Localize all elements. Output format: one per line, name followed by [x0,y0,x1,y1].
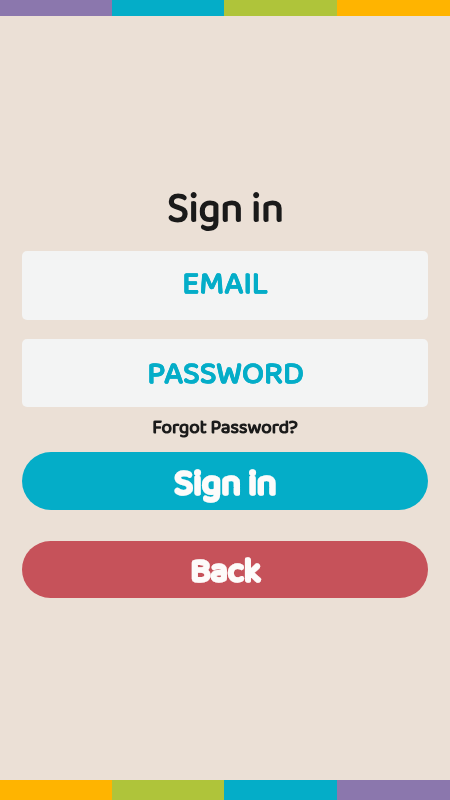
staticText: Back [190,544,261,598]
staticText: PASSWORD [147,349,304,400]
staticText: PASSWORD [147,349,304,400]
other: Decorative top band [0,0,450,16]
button[interactable]: EMAIL [22,251,428,320]
other: Decorative bottom band [0,780,450,800]
button[interactable]: Sign in [22,452,428,510]
staticText: EMAIL [182,259,268,310]
button[interactable]: Forgot Password? [152,413,298,439]
staticText: Sign in [167,177,284,231]
staticText: Sign in [174,455,277,510]
staticText: Sign in [167,177,284,231]
staticText: Sign in [174,455,277,510]
staticText: Back [190,544,261,598]
staticText: EMAIL [182,259,268,310]
button[interactable]: PASSWORD [22,339,428,407]
staticText: Forgot Password? [152,413,298,439]
button[interactable]: Back [22,541,428,598]
staticText: Forgot Password? [152,413,298,439]
